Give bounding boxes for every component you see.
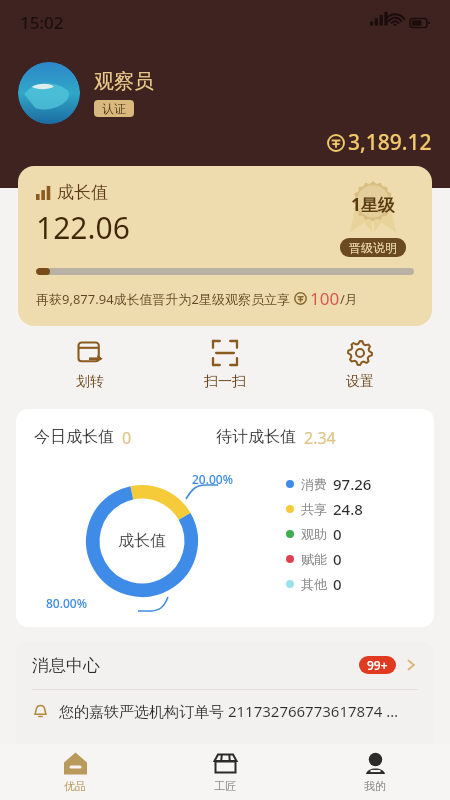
staticText: 待计成长值 [216,427,296,447]
staticText: 2.34 [304,427,336,449]
staticText: 消费 [301,476,327,492]
button[interactable]: 您的嘉轶严选机构订单号 211732766773617874 … [16,690,434,731]
staticText: 20.00% [192,471,233,487]
staticText: 今日成长值 [34,427,114,447]
button[interactable]: 成长值 [18,166,432,326]
staticText: 0 [122,427,132,449]
staticText: 1星级 [351,193,395,216]
button[interactable]: 优品 [0,744,150,800]
staticText: 赋能 [301,551,327,567]
staticText: 3,189.12 [348,128,432,157]
staticText: 97.26 [333,474,372,494]
staticText: 99+ [367,657,388,673]
staticText: 晋级说明 [349,240,397,255]
staticText: 划转 [76,373,104,391]
staticText: 观助 [301,526,327,542]
button[interactable]: 您的嘉用安机构话单号 2117191948591911 … [16,731,434,771]
button[interactable]: 划转 [45,336,135,395]
button[interactable]: 工匠 [150,744,300,800]
staticText: 消息中心 [32,655,100,676]
button[interactable]: 观助 [286,521,342,546]
staticText: 其他 [301,576,327,592]
staticText: 观察员 [94,69,154,94]
staticText: 122.06 [36,207,130,248]
button[interactable]: 晋级说明 [340,238,406,257]
button[interactable]: 赋能 [286,546,342,571]
staticText: 扫一扫 [204,373,246,391]
staticText: 认证 [102,101,126,116]
staticText: 15:02 [20,11,64,34]
button[interactable]: 认证 [94,100,134,117]
button[interactable]: 共享 [286,496,363,521]
button[interactable]: 我的 [300,744,450,800]
staticText: 再获9,877.94成长值晋升为2星级观察员立享 [36,290,294,308]
staticText: 设置 [346,373,374,391]
staticText: 共享 [301,501,327,517]
staticText: 工匠 [214,779,236,793]
staticText: 成长值 [118,531,166,551]
staticText: 成长值 [57,182,108,203]
staticText: 0 [333,574,342,594]
other: More messages [404,658,418,672]
staticText: 0 [333,524,342,544]
staticText: 80.00% [46,595,87,611]
staticText: 100 [310,287,340,310]
button[interactable]: 消息中心 [16,641,434,689]
staticText: 24.8 [333,499,363,519]
staticText: 优品 [64,779,86,793]
button[interactable]: 扫一扫 [180,336,270,395]
button[interactable]: 设置 [315,336,405,395]
staticText: 您的嘉用安机构话单号 2117191948591911 … [59,741,366,761]
button[interactable]: 其他 [286,571,342,596]
staticText: 我的 [364,779,386,793]
staticText: /月 [340,290,358,308]
button[interactable]: 消费 [286,471,372,496]
staticText: 您的嘉轶严选机构订单号 211732766773617874 … [59,701,399,721]
staticText: 0 [333,549,342,569]
